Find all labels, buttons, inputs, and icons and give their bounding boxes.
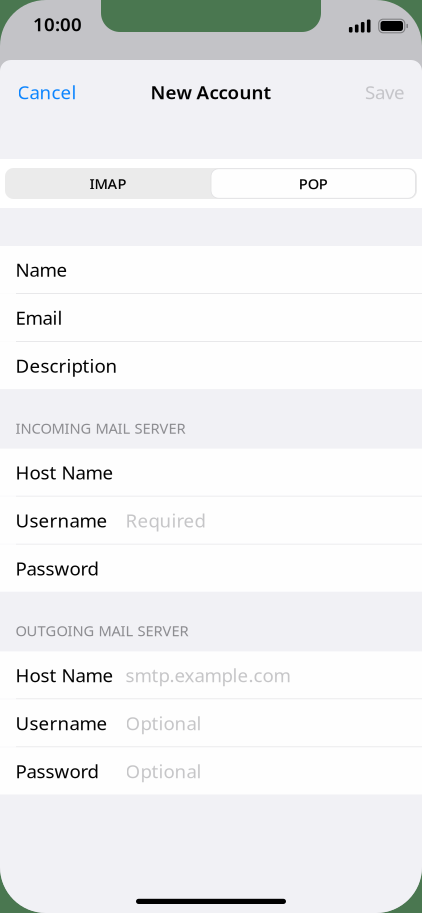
staticText: Optional [125,711,201,735]
staticText: Description [15,353,117,378]
staticText: Host Name [15,460,113,485]
staticText: Username [15,508,107,533]
staticText: POP [299,174,328,193]
staticText: Email [15,305,62,330]
staticText: Username [15,711,107,735]
button[interactable]: Username [0,699,422,747]
staticText: Password [15,759,98,783]
staticText: Name [15,257,67,282]
staticText: 10:00 [33,12,82,36]
button[interactable]: Save [348,68,422,116]
button[interactable]: POP [211,168,417,199]
button[interactable]: Host Name [0,449,422,496]
button[interactable]: Username [0,497,422,544]
staticText: Password [15,556,98,581]
staticText: New Account [150,80,271,104]
staticText: INCOMING MAIL SERVER [15,418,185,438]
button[interactable]: IMAP [5,168,211,199]
staticText: Host Name [15,663,113,687]
button[interactable]: Password [0,747,422,795]
button[interactable]: Host Name [0,651,422,699]
button[interactable]: Name [0,246,422,293]
staticText: OUTGOING MAIL SERVER [15,621,188,640]
button[interactable]: Email [0,294,422,341]
staticText: Save [365,80,405,104]
staticText: Required [125,508,205,533]
staticText: smtp.example.com [125,663,290,687]
button[interactable]: Cancel [0,68,94,116]
button[interactable]: Description [0,342,422,389]
staticText: Optional [125,759,201,783]
button[interactable]: Password [0,545,422,592]
staticText: Cancel [17,80,76,104]
staticText: IMAP [89,174,126,193]
